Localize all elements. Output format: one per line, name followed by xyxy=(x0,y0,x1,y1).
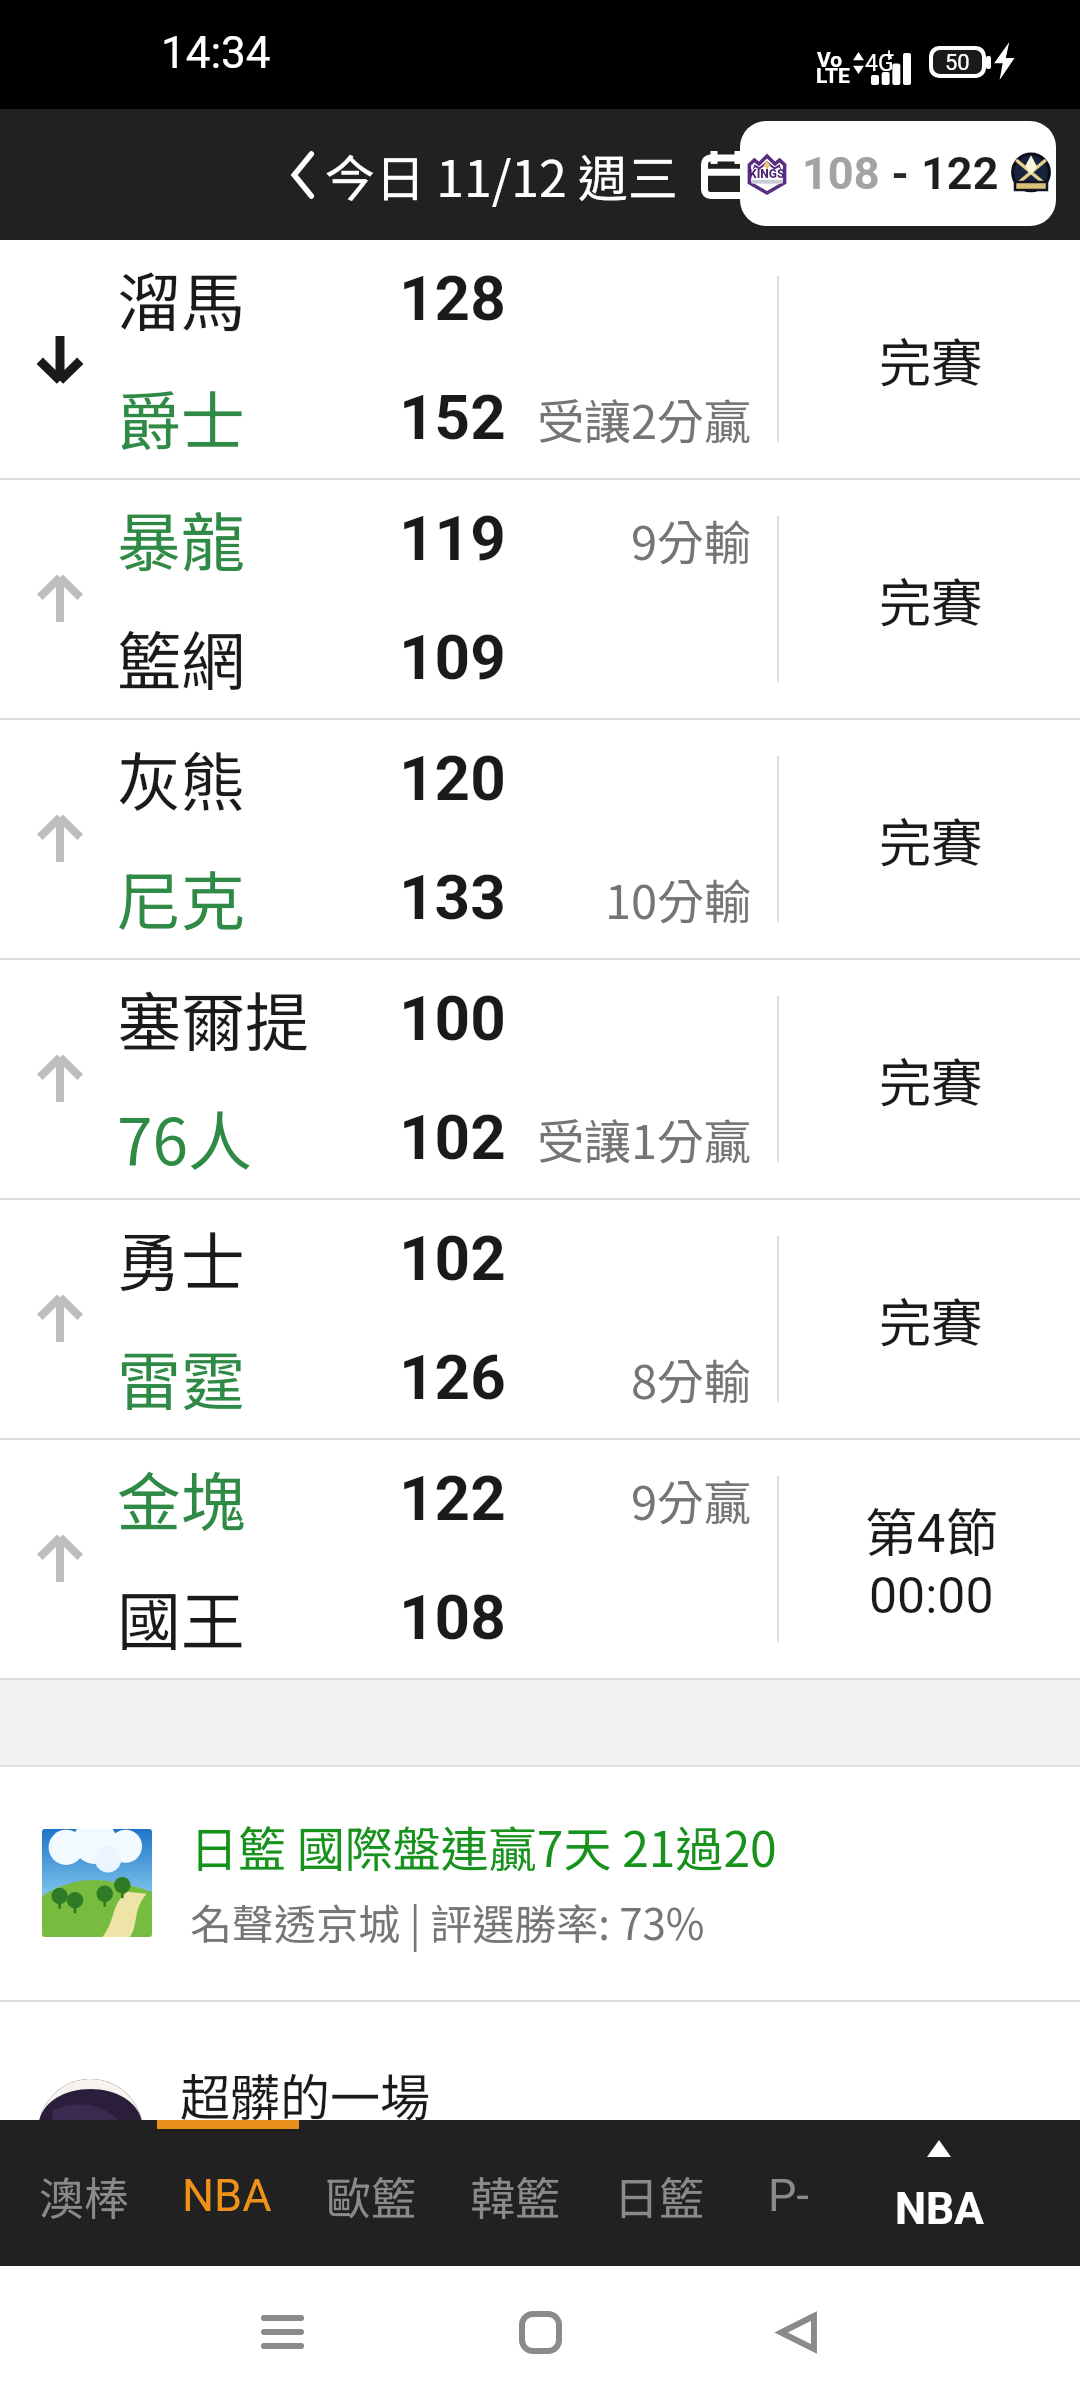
staticText: 102 xyxy=(399,1101,506,1174)
staticText: 128 xyxy=(399,262,506,335)
staticText: 受讓1分贏 xyxy=(537,1104,752,1172)
staticText: 完賽 xyxy=(879,1042,984,1117)
staticText: 名聲透京城 | 評選勝率: 73% xyxy=(190,1891,705,1952)
staticText: 122 xyxy=(399,1462,506,1535)
staticText: 溜馬 xyxy=(117,252,245,345)
staticText: 108 xyxy=(399,1581,506,1654)
staticText: + xyxy=(884,45,895,66)
staticText: 金塊 xyxy=(117,1452,245,1545)
button[interactable]: Home xyxy=(480,2272,600,2392)
staticText: 日籃 國際盤連贏7天 21過20 xyxy=(190,1811,777,1881)
staticText: 120 xyxy=(399,742,506,815)
staticText: 國王 xyxy=(117,1571,245,1664)
button[interactable]: 灰熊 xyxy=(0,720,1080,958)
staticText: 133 xyxy=(399,861,506,934)
staticText: 籃網 xyxy=(117,611,245,704)
staticText: KINGS xyxy=(749,167,785,181)
staticText: 澳棒 xyxy=(39,2163,130,2228)
staticText: 塞爾提 xyxy=(117,972,309,1065)
staticText: 歐籃 xyxy=(326,2163,417,2228)
staticText: NBA xyxy=(895,2183,984,2235)
staticText: 完賽 xyxy=(879,802,984,877)
button[interactable]: 塞爾提 xyxy=(0,960,1080,1198)
staticText: 119 xyxy=(399,502,506,575)
button[interactable]: P- xyxy=(718,2120,858,2266)
staticText: 102 xyxy=(399,1222,506,1295)
staticText: 今日 11/12 週三 xyxy=(325,139,678,211)
button[interactable]: Previous day xyxy=(281,140,325,210)
staticText: 灰熊 xyxy=(117,732,245,825)
staticText: 00:00 xyxy=(869,1567,994,1626)
staticText: 108 xyxy=(802,147,880,200)
staticText: - xyxy=(880,147,921,200)
staticText: 完賽 xyxy=(879,1282,984,1357)
staticText: 9分輸 xyxy=(631,505,752,573)
staticText: 韓籃 xyxy=(470,2163,561,2228)
button[interactable]: 澳棒 xyxy=(14,2120,154,2266)
staticText: 9分贏 xyxy=(631,1465,752,1533)
staticText: 100 xyxy=(399,982,506,1055)
staticText: P- xyxy=(768,2169,809,2222)
staticText: 76人 xyxy=(117,1091,253,1184)
staticText: 尼克 xyxy=(117,851,245,944)
button[interactable]: Recents xyxy=(222,2272,342,2392)
button[interactable]: 日籃 xyxy=(589,2120,729,2266)
staticText: 日籃 xyxy=(614,2163,705,2228)
staticText: 爵士 xyxy=(117,371,245,464)
button[interactable]: KINGS xyxy=(740,121,1056,226)
staticText: 超髒的一場 xyxy=(180,2058,430,2130)
button[interactable]: 歐籃 xyxy=(301,2120,441,2266)
button[interactable]: 暴龍 xyxy=(0,480,1080,718)
staticText: 4G xyxy=(865,50,894,77)
staticText: 雷霆 xyxy=(117,1331,245,1424)
button[interactable]: Calendar xyxy=(695,144,757,206)
staticText: 122 xyxy=(921,147,999,200)
button[interactable]: 溜馬 xyxy=(0,240,1080,478)
staticText: 126 xyxy=(399,1341,506,1414)
button[interactable]: 日籃 國際盤連贏7天 21過20 xyxy=(0,1767,1080,2000)
staticText: Vo xyxy=(817,48,843,73)
staticText: 勇士 xyxy=(117,1212,245,1305)
button[interactable]: Back xyxy=(737,2272,857,2392)
staticText: 14:34 xyxy=(161,27,271,79)
staticText: LTE xyxy=(816,64,850,89)
button[interactable]: NBA xyxy=(157,2120,297,2266)
staticText: 第4節 xyxy=(865,1492,998,1567)
button[interactable]: NBA xyxy=(849,2120,1029,2266)
button[interactable]: 勇士 xyxy=(0,1200,1080,1438)
staticText: 8分輸 xyxy=(631,1344,752,1412)
button[interactable]: 超髒的一場 xyxy=(0,2002,1080,2120)
staticText: 10分輸 xyxy=(605,864,752,932)
staticText: 50 xyxy=(945,50,970,74)
staticText: 152 xyxy=(399,381,506,454)
staticText: 暴龍 xyxy=(117,492,245,585)
staticText: 完賽 xyxy=(879,322,984,397)
staticText: 完賽 xyxy=(879,562,984,637)
staticText: 受讓2分贏 xyxy=(537,384,752,452)
button[interactable]: 韓籃 xyxy=(445,2120,585,2266)
button[interactable]: 金塊 xyxy=(0,1440,1080,1678)
staticText: 109 xyxy=(399,621,506,694)
staticText: NBA xyxy=(182,2169,272,2222)
